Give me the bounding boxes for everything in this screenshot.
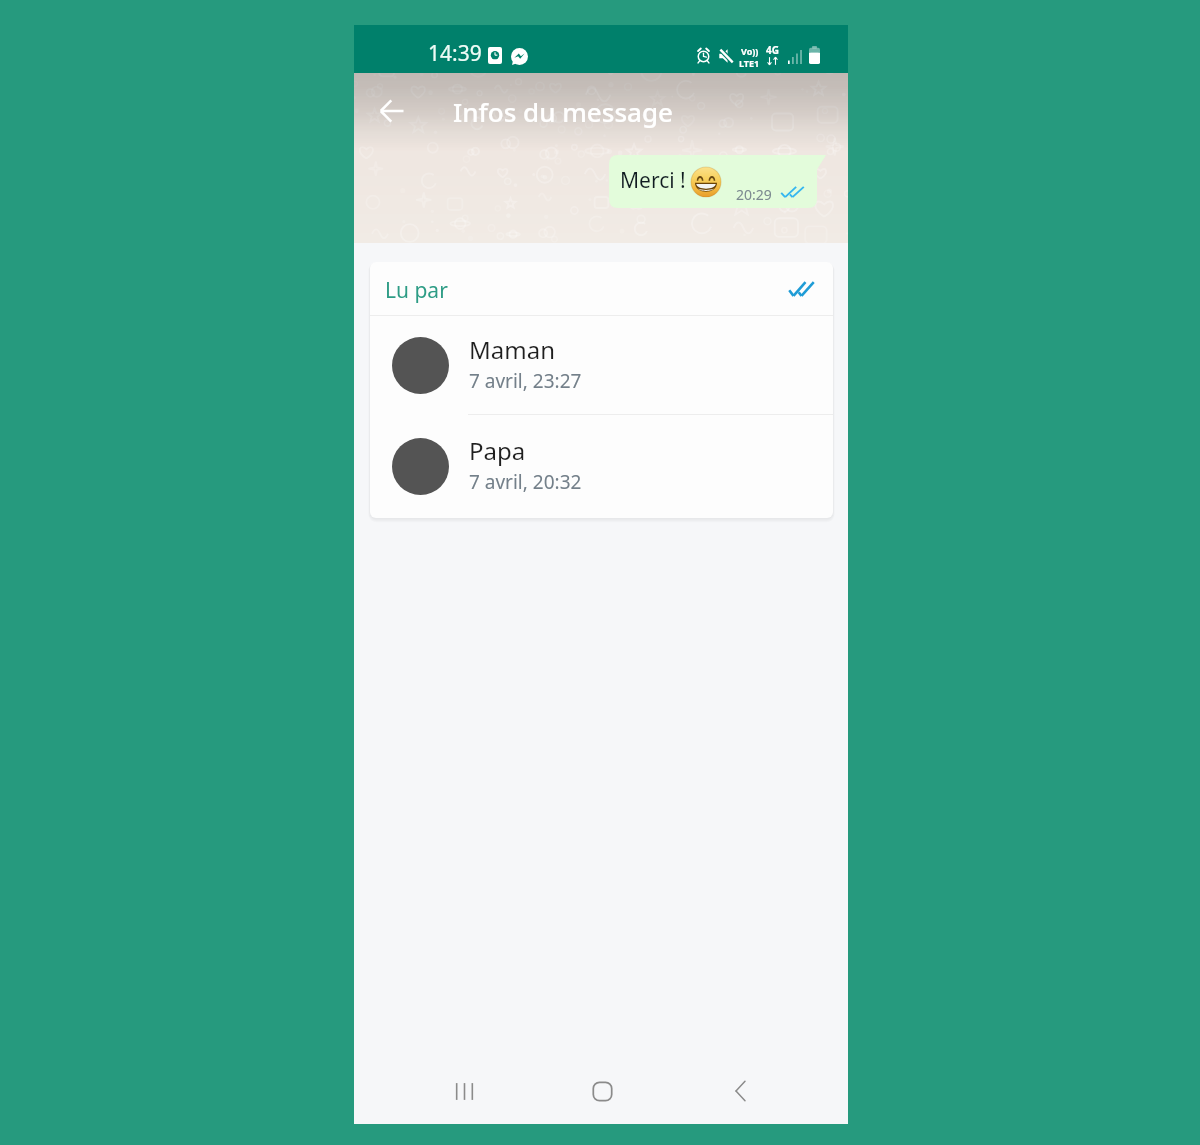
staticText: 7 avril, 23:27 (469, 368, 582, 394)
staticText: Merci ! (620, 166, 686, 195)
staticText: Infos du message (453, 94, 673, 129)
staticText: Maman (469, 333, 555, 366)
staticText: 14:39 (428, 39, 482, 68)
button[interactable]: Lu par (370, 262, 833, 315)
button[interactable]: Recent apps (430, 1057, 498, 1125)
button[interactable]: Back (706, 1057, 774, 1125)
button[interactable]: Back (372, 91, 412, 131)
staticText: Lu par (385, 276, 448, 305)
button[interactable]: Papa (370, 415, 833, 517)
button[interactable]: Home (568, 1057, 636, 1125)
staticText: LTE1 (739, 57, 760, 69)
staticText: 20:29 (736, 185, 772, 204)
staticText: 7 avril, 20:32 (469, 469, 582, 495)
staticText: 4G (766, 43, 779, 57)
button[interactable]: Maman (370, 316, 833, 414)
staticText: Vo)) (741, 45, 759, 57)
staticText: Papa (469, 434, 526, 467)
